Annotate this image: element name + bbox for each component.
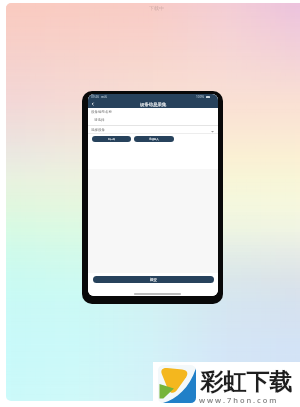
staticText: 彩虹下载 (200, 368, 292, 397)
staticText: 手动输入 (149, 138, 159, 141)
staticText: 09:26 周四 (91, 95, 108, 99)
staticText: w w w . 7 h o n . c o m (199, 395, 277, 405)
staticText: 提交 (150, 278, 157, 282)
staticText: 请选择 (94, 118, 105, 122)
button[interactable]: Back (89, 100, 97, 108)
staticText: 扫一扫 (108, 138, 116, 141)
button[interactable]: 手动输入 (134, 136, 174, 142)
staticText: 下载中 (149, 5, 164, 11)
button[interactable]: 扫一扫 (92, 136, 131, 142)
staticText: 选择设备 (91, 128, 105, 132)
button[interactable]: 提交 (93, 276, 214, 283)
staticText: 设备信息采集 (140, 102, 167, 108)
staticText: 设备编号名称 (91, 110, 112, 114)
staticText: 100% (196, 95, 205, 99)
